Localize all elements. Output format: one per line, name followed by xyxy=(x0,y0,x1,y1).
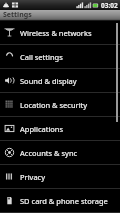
button[interactable]: Sound & display xyxy=(0,69,120,92)
staticText: Settings xyxy=(3,10,32,20)
staticText: Sound & display xyxy=(20,76,77,86)
button[interactable]: Location & security xyxy=(0,93,120,116)
button[interactable]: Applications xyxy=(0,117,120,140)
staticText: Location & security xyxy=(20,100,88,110)
button[interactable]: Wireless & networks xyxy=(0,21,120,44)
button[interactable]: Call settings xyxy=(0,45,120,68)
button[interactable]: Accounts & sync xyxy=(0,141,120,164)
staticText: Applications xyxy=(20,124,64,134)
button[interactable]: SD card & phone storage xyxy=(0,189,120,212)
staticText: Accounts & sync xyxy=(20,148,78,158)
staticText: Call settings xyxy=(20,52,63,62)
staticText: SD card & phone storage xyxy=(20,196,108,206)
staticText: Wireless & networks xyxy=(20,28,92,38)
button[interactable]: Privacy xyxy=(0,165,120,188)
staticText: 03:02 xyxy=(101,1,118,10)
staticText: Privacy xyxy=(20,172,46,182)
